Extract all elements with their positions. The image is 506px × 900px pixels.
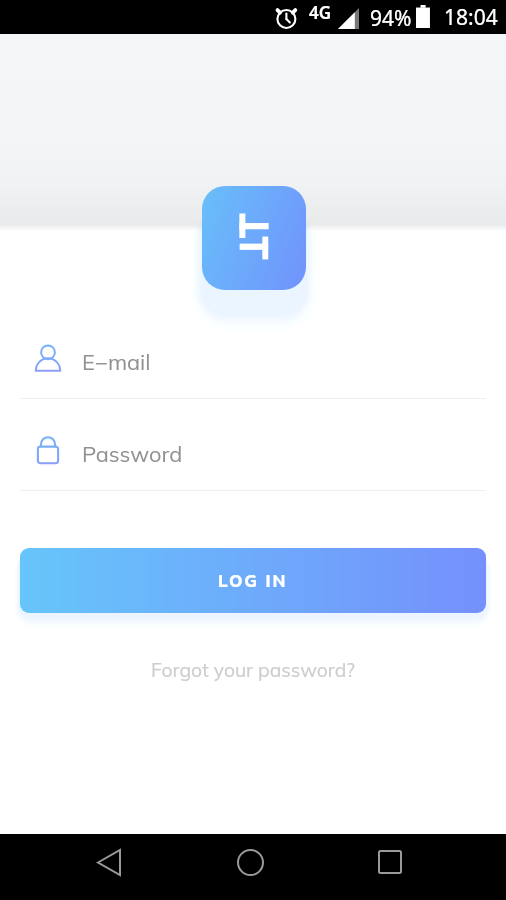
staticText: LOG IN — [218, 570, 288, 591]
button[interactable]: Forgot your password? — [0, 655, 506, 685]
staticText: Forgot your password? — [151, 658, 355, 682]
button[interactable]: E−mail — [20, 334, 486, 388]
staticText: E−mail — [82, 348, 151, 375]
staticText: 4G — [309, 1, 332, 24]
staticText: Password — [82, 440, 183, 467]
staticText: 18:04 — [444, 3, 498, 32]
button[interactable]: Recent apps — [355, 834, 425, 890]
button[interactable]: Password — [20, 426, 486, 480]
staticText: 94% — [370, 4, 412, 33]
button[interactable]: Back — [74, 834, 144, 890]
button[interactable]: LOG IN — [20, 548, 486, 613]
button[interactable]: App logo — [202, 186, 306, 290]
button[interactable]: Home — [215, 834, 285, 890]
